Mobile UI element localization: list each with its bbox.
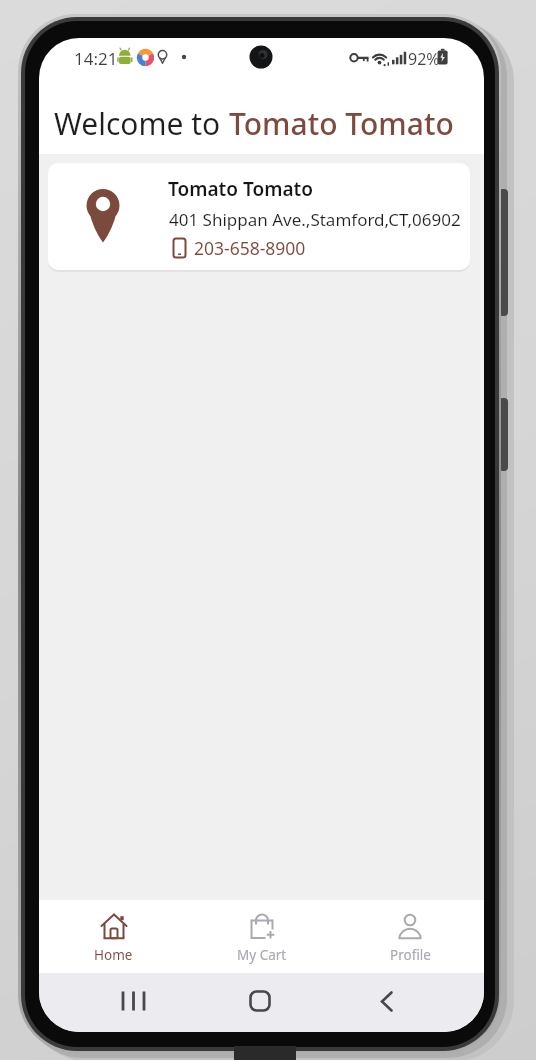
button[interactable]: Tomato Tomato	[48, 163, 470, 270]
staticText: Tomato Tomato	[229, 103, 454, 144]
button[interactable]: My Cart	[188, 900, 336, 973]
staticText: My Cart	[237, 946, 287, 964]
button[interactable]: Home	[39, 900, 188, 973]
staticText: 203-658-8900	[194, 236, 306, 260]
button[interactable]	[188, 973, 336, 1032]
staticText: Home	[94, 946, 133, 964]
staticText: 14:21	[74, 47, 118, 70]
staticText: 92%	[408, 48, 440, 70]
button[interactable]: 203-658-8900	[172, 236, 306, 260]
staticText: Profile	[390, 946, 431, 964]
staticText: Welcome to	[54, 103, 229, 144]
button[interactable]	[336, 973, 484, 1032]
button[interactable]: Profile	[336, 900, 484, 973]
staticText: 401 Shippan Ave.,Stamford,CT,06902	[169, 208, 461, 231]
staticText: Tomato Tomato	[168, 176, 313, 202]
button[interactable]	[39, 973, 188, 1032]
